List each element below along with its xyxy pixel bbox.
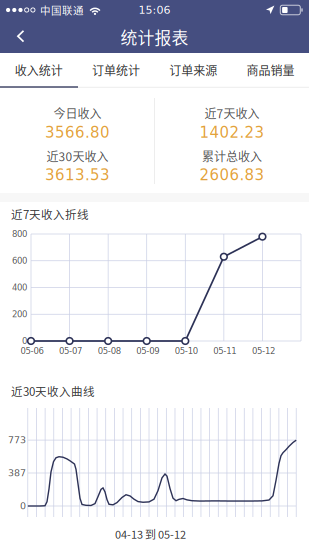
staticText: 近30天收入: [46, 147, 108, 165]
staticText: 商品销量: [246, 61, 294, 79]
staticText: 近30天收入曲线: [11, 383, 95, 399]
staticText: 近7天收入折线: [11, 206, 89, 222]
button[interactable]: 订单来源: [154, 53, 232, 87]
button[interactable]: 商品销量: [232, 53, 309, 87]
staticText: 0: [20, 500, 26, 512]
staticText: 订单统计: [92, 61, 140, 79]
staticText: 05-11: [213, 346, 236, 356]
staticText: 400: [12, 283, 27, 292]
staticText: 773: [8, 435, 26, 446]
staticText: 600: [12, 256, 27, 266]
staticText: 2606.83: [199, 166, 264, 184]
staticText: 3566.80: [45, 124, 110, 141]
staticText: 15:06: [138, 4, 170, 16]
staticText: 0: [22, 336, 27, 346]
staticText: 800: [12, 229, 27, 239]
staticText: 05-06: [20, 346, 43, 356]
button[interactable]: 订单统计: [77, 53, 154, 87]
staticText: 387: [8, 467, 26, 479]
button[interactable]: 收入统计: [0, 53, 77, 87]
staticText: 3613.53: [45, 166, 110, 184]
staticText: 累计总收入: [202, 147, 262, 165]
staticText: 订单来源: [169, 61, 217, 79]
staticText: 200: [12, 309, 27, 319]
staticText: 中国联通: [40, 2, 84, 18]
staticText: 1402.23: [199, 124, 264, 141]
staticText: 05-09: [136, 346, 159, 356]
staticText: 04-13 到 05-12: [115, 526, 186, 542]
button[interactable]: Back: [0, 20, 42, 53]
staticText: 05-12: [252, 346, 275, 356]
staticText: 05-07: [59, 346, 82, 356]
staticText: 近7天收入: [204, 104, 259, 122]
staticText: 05-10: [175, 346, 198, 356]
staticText: 统计报表: [120, 25, 188, 49]
staticText: 收入统计: [15, 61, 63, 79]
staticText: 今日收入: [53, 104, 101, 122]
staticText: 05-08: [98, 346, 121, 356]
